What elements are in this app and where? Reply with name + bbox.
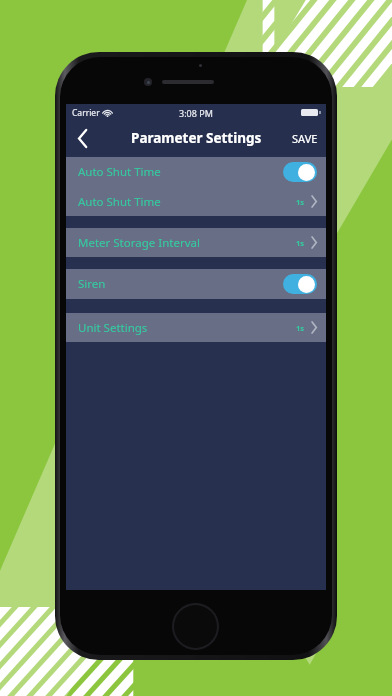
staticText: 3:08 PM	[179, 107, 213, 119]
button[interactable]: Auto Shut Time toggle, on	[283, 162, 317, 182]
staticText: SAVE	[292, 131, 318, 146]
staticText: 1s	[296, 323, 305, 333]
staticText: Auto Shut Time	[78, 164, 161, 180]
button[interactable]: Auto Shut Time	[66, 157, 326, 187]
button[interactable]: SAVE	[290, 125, 320, 152]
button[interactable]: Siren	[66, 269, 326, 299]
button[interactable]: Auto Shut Time	[66, 187, 326, 216]
staticText: 1s	[296, 197, 305, 207]
button[interactable]: Meter Storage Interval	[66, 228, 326, 257]
staticText: Auto Shut Time	[78, 194, 161, 210]
staticText: Unit Settings	[78, 320, 148, 336]
button[interactable]: Unit Settings	[66, 313, 326, 342]
staticText: Meter Storage Interval	[78, 235, 200, 251]
button[interactable]: Home	[172, 603, 219, 650]
button[interactable]: Siren toggle, on	[283, 274, 317, 294]
button[interactable]: Back	[66, 121, 100, 155]
staticText: 1s	[296, 238, 305, 248]
staticText: Parameter Settings	[131, 129, 262, 147]
staticText: Siren	[78, 276, 106, 292]
staticText: Carrier	[72, 107, 100, 119]
